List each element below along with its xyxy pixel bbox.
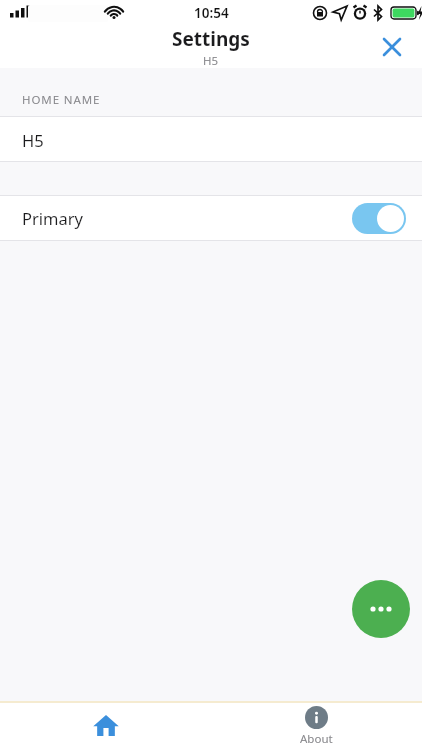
button[interactable]: About <box>211 703 422 750</box>
button[interactable]: H5 <box>0 117 422 162</box>
staticText: HOME NAME <box>22 92 101 108</box>
button[interactable]: Primary toggle, on <box>352 203 406 234</box>
button[interactable]: Home <box>0 703 211 750</box>
staticText: 10:54 <box>194 4 229 22</box>
staticText: About <box>300 731 333 747</box>
button[interactable]: More options <box>352 580 410 638</box>
staticText: Primary <box>22 207 83 229</box>
button[interactable]: Primary <box>0 195 422 241</box>
staticText: H5 <box>203 53 219 68</box>
staticText: Settings <box>172 26 250 52</box>
button[interactable]: Close <box>370 26 414 68</box>
staticText: H5 <box>22 129 44 151</box>
